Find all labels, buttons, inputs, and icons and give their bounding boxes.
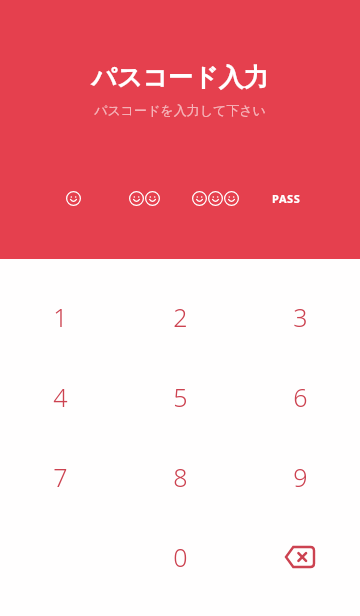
button[interactable]: PASS <box>251 181 322 215</box>
staticText: PASS <box>272 191 301 206</box>
button[interactable]: Delete <box>240 517 360 597</box>
button[interactable]: 3 <box>240 277 360 357</box>
staticText: 0 <box>173 540 188 574</box>
staticText: 1 <box>53 300 68 334</box>
staticText: パスコード入力 <box>91 62 269 93</box>
staticText: 9 <box>293 460 308 494</box>
button[interactable]: 5 <box>120 357 240 437</box>
staticText: 3 <box>293 300 308 334</box>
staticText: 2 <box>173 300 188 334</box>
button[interactable] <box>180 181 251 215</box>
button[interactable]: 8 <box>120 437 240 517</box>
staticText: 5 <box>173 380 188 414</box>
staticText: パスコードを入力して下さい <box>94 102 266 118</box>
staticText: 8 <box>173 460 188 494</box>
button[interactable]: 1 <box>0 277 120 357</box>
button[interactable] <box>109 181 180 215</box>
button[interactable]: 7 <box>0 437 120 517</box>
button[interactable]: 9 <box>240 437 360 517</box>
staticText: 7 <box>53 460 68 494</box>
button[interactable]: 0 <box>120 517 240 597</box>
button[interactable] <box>38 181 109 215</box>
button[interactable]: 6 <box>240 357 360 437</box>
staticText: 6 <box>293 380 308 414</box>
button[interactable]: 4 <box>0 357 120 437</box>
staticText: 4 <box>53 380 68 414</box>
button[interactable]: 2 <box>120 277 240 357</box>
